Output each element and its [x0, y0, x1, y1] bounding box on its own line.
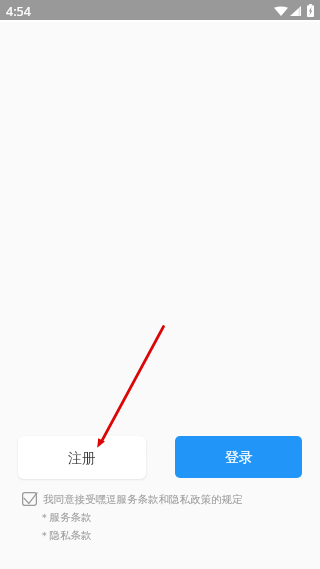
staticText: 4:54: [6, 3, 31, 20]
staticText: 我同意接受嘿逗服务条款和隐私政策的规定: [43, 493, 243, 506]
other: Battery charging: [307, 4, 314, 17]
button[interactable]: ＊服务条款: [39, 511, 92, 524]
button[interactable]: 注册: [18, 436, 146, 479]
button[interactable]: 登录: [175, 436, 302, 478]
button[interactable]: ＊隐私条款: [39, 529, 92, 542]
button[interactable]: 我同意接受嘿逗服务条款和隐私政策的规定: [20, 490, 247, 508]
staticText: 注册: [68, 450, 96, 468]
other: Mobile signal: [290, 6, 301, 16]
staticText: 登录: [225, 449, 253, 467]
other: Wi-Fi signal: [274, 5, 288, 16]
